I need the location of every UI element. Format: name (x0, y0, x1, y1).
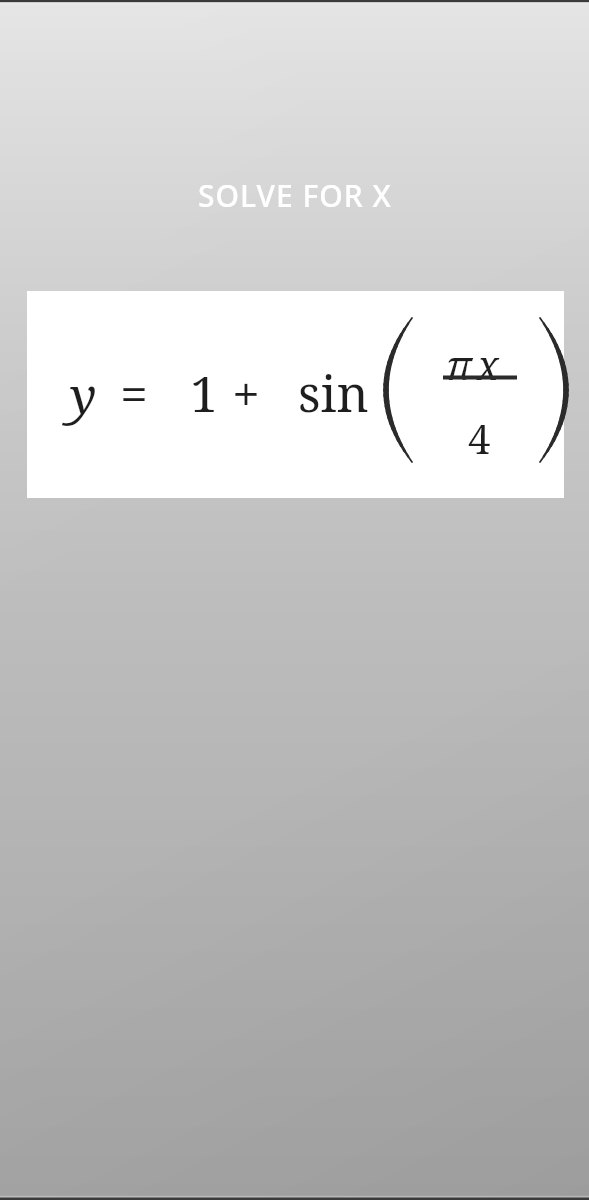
staticText: + (232, 359, 260, 427)
staticText: 4 (468, 411, 491, 465)
staticText: π (446, 337, 472, 391)
staticText: y (70, 361, 97, 429)
staticText: = (120, 359, 148, 427)
staticText: SOLVE FOR X (198, 175, 392, 216)
button[interactable]: SOLVE FOR X (0, 172, 589, 218)
staticText: 1 (190, 359, 218, 427)
button[interactable]: Equation y equals 1 plus sine of pi x ov… (27, 291, 564, 498)
staticText: sin (298, 359, 369, 427)
staticText: x (477, 337, 499, 391)
